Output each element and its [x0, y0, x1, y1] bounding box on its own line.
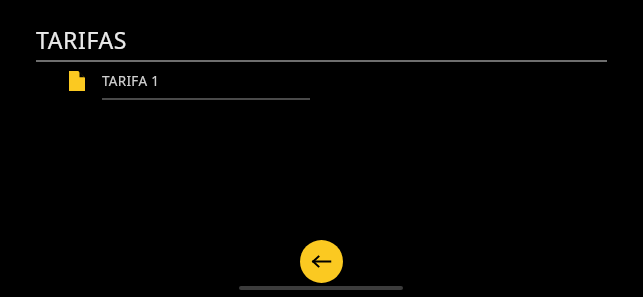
staticText: TARIFAS [36, 24, 127, 55]
button[interactable]: Back [300, 240, 343, 283]
staticText: TARIFA 1 [102, 72, 160, 90]
button[interactable]: TARIFA 1 [64, 66, 314, 100]
